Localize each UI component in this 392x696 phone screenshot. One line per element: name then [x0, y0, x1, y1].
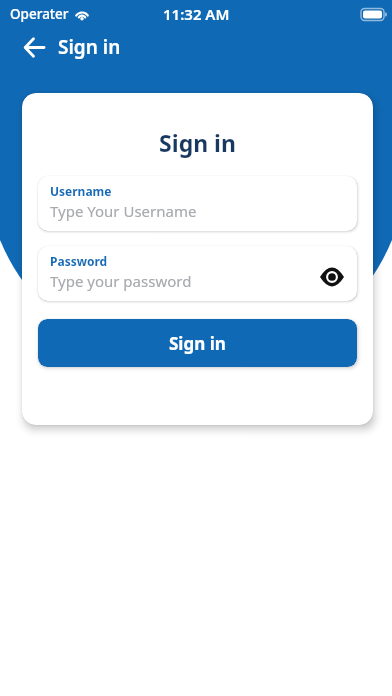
staticText: Sign in: [38, 127, 357, 158]
staticText: Sign in: [58, 34, 121, 60]
button[interactable]: [316, 261, 348, 293]
button[interactable]: Username: [38, 176, 357, 231]
staticText: Operater: [10, 5, 69, 23]
button[interactable]: Sign in: [38, 319, 357, 367]
staticText: 11:32 AM: [163, 4, 230, 24]
staticText: Password: [50, 253, 108, 269]
button[interactable]: [14, 28, 54, 66]
staticText: Type Your Username: [50, 201, 197, 221]
staticText: Sign in: [169, 332, 226, 355]
staticText: Type your password: [50, 271, 192, 291]
button[interactable]: Password: [38, 246, 357, 301]
staticText: Username: [50, 183, 112, 199]
